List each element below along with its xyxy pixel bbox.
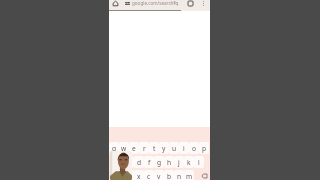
- staticText: r: [143, 144, 146, 153]
- button[interactable]: Backspace: [199, 171, 209, 180]
- button[interactable]: a: [114, 156, 124, 168]
- button[interactable]: d: [134, 156, 144, 168]
- staticText: p: [202, 144, 207, 153]
- staticText: h: [167, 158, 172, 167]
- staticText: b: [167, 172, 172, 180]
- staticText: m: [186, 172, 193, 180]
- button[interactable]: n: [174, 170, 184, 180]
- staticText: u: [172, 144, 177, 153]
- staticText: d: [137, 158, 142, 167]
- staticText: f: [148, 158, 151, 167]
- button[interactable]: b: [164, 170, 174, 180]
- staticText: x: [137, 172, 141, 180]
- button[interactable]: Page info: [123, 0, 131, 7]
- staticText: t: [153, 144, 156, 153]
- button[interactable]: j: [174, 156, 184, 168]
- button[interactable]: r: [139, 142, 149, 154]
- button[interactable]: p: [199, 142, 209, 154]
- button[interactable]: Video call: [110, 151, 132, 180]
- button[interactable]: Tabs: [186, 0, 194, 7]
- button[interactable]: f: [144, 156, 154, 168]
- staticText: k: [187, 158, 191, 167]
- staticText: i: [183, 144, 185, 153]
- button[interactable]: w: [119, 142, 129, 154]
- button[interactable]: u: [169, 142, 179, 154]
- staticText: l: [198, 158, 200, 167]
- staticText: o: [192, 144, 196, 153]
- button[interactable]: k: [184, 156, 194, 168]
- button[interactable]: l: [194, 156, 204, 168]
- button[interactable]: More options: [199, 0, 207, 7]
- button[interactable]: q: [109, 142, 119, 154]
- button[interactable]: s: [124, 156, 134, 168]
- staticText: v: [157, 172, 161, 180]
- staticText: n: [177, 172, 182, 180]
- button[interactable]: o: [189, 142, 199, 154]
- staticText: y: [162, 144, 166, 153]
- staticText: z: [127, 172, 131, 180]
- staticText: c: [147, 172, 151, 180]
- button[interactable]: y: [159, 142, 169, 154]
- button[interactable]: z: [124, 170, 134, 180]
- staticText: google.com/search?q: [132, 0, 179, 6]
- button[interactable]: i: [179, 142, 189, 154]
- button[interactable]: g: [154, 156, 164, 168]
- staticText: w: [121, 144, 127, 153]
- button[interactable]: t: [149, 142, 159, 154]
- button[interactable]: x: [134, 170, 144, 180]
- button[interactable]: Home: [111, 0, 119, 7]
- staticText: e: [132, 144, 136, 153]
- button[interactable]: v: [154, 170, 164, 180]
- button[interactable]: Share: [170, 0, 178, 7]
- staticText: g: [157, 158, 162, 167]
- button[interactable]: m: [184, 170, 194, 180]
- button[interactable]: c: [144, 170, 154, 180]
- staticText: j: [178, 158, 180, 167]
- staticText: a: [117, 158, 121, 167]
- staticText: s: [127, 158, 131, 167]
- staticText: q: [112, 144, 117, 153]
- button[interactable]: e: [129, 142, 139, 154]
- button[interactable]: h: [164, 156, 174, 168]
